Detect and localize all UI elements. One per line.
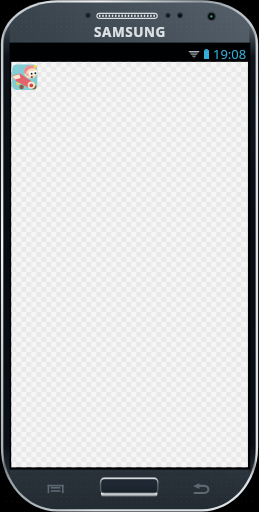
staticText: 19:08 [213,45,247,63]
button[interactable]: App icon [11,63,42,94]
staticText: SAMSUNG [94,23,166,37]
